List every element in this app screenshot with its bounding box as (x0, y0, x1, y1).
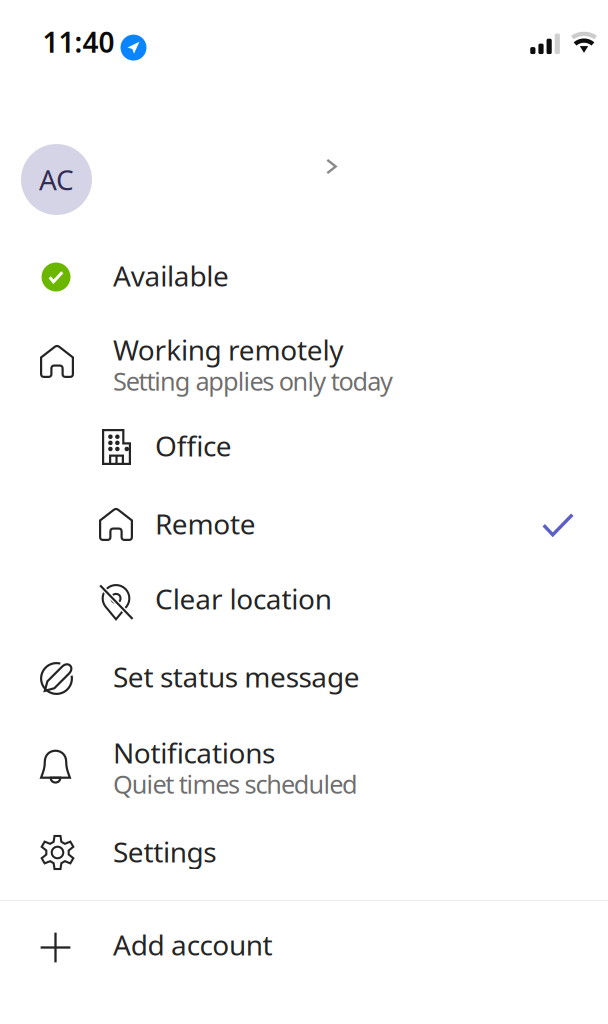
button[interactable]: Settings (0, 806, 608, 900)
staticText: Office (155, 427, 232, 464)
button[interactable]: Add account (0, 901, 608, 984)
staticText: Set status message (113, 658, 360, 695)
staticText: 11:40 (42, 23, 114, 61)
button[interactable]: Working remotely (0, 318, 608, 404)
button[interactable]: Clear location (0, 558, 608, 634)
staticText: Available (113, 257, 229, 294)
button[interactable]: Notifications (0, 718, 608, 806)
button[interactable]: Office (0, 404, 608, 482)
staticText: Add account (113, 926, 272, 963)
staticText: Clear location (155, 580, 332, 617)
staticText: Setting applies only today (113, 364, 393, 398)
staticText: Remote (155, 505, 256, 542)
staticText: Quiet times scheduled (113, 767, 358, 801)
button[interactable]: Switch account (317, 151, 343, 207)
button[interactable]: Available (0, 238, 608, 318)
button[interactable]: Set status message (0, 634, 608, 718)
staticText: Working remotely (113, 331, 343, 368)
staticText: Notifications (113, 734, 275, 771)
staticText: AC (39, 161, 74, 198)
staticText: Settings (113, 833, 216, 870)
button[interactable]: Remote (0, 482, 608, 558)
button[interactable]: Account AC (21, 144, 92, 215)
